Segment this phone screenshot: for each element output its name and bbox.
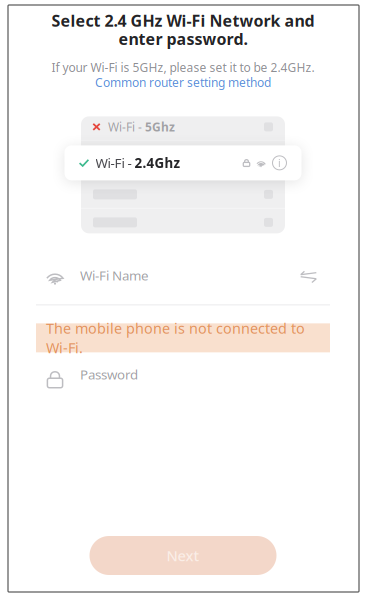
- staticText: Select 2.4 GHz Wi-Fi Network and: [51, 10, 314, 31]
- staticText: If your Wi-Fi is 5GHz, please set it to …: [51, 59, 314, 75]
- staticText: Password: [80, 365, 138, 383]
- staticText: i: [278, 156, 281, 170]
- button[interactable]: Common router setting method: [95, 74, 271, 90]
- staticText: enter password.: [118, 28, 247, 49]
- staticText: Common router setting method: [95, 74, 271, 90]
- staticText: 5Ghz: [145, 119, 175, 135]
- staticText: Next: [166, 546, 199, 565]
- staticText: 2.4Ghz: [134, 154, 180, 172]
- staticText: Wi-Fi -: [108, 119, 145, 135]
- staticText: Wi-Fi Name: [80, 266, 149, 284]
- staticText: The mobile phone is not connected to Wi-…: [46, 318, 305, 357]
- staticText: Wi-Fi -: [95, 154, 134, 172]
- button[interactable]: Next: [89, 536, 276, 575]
